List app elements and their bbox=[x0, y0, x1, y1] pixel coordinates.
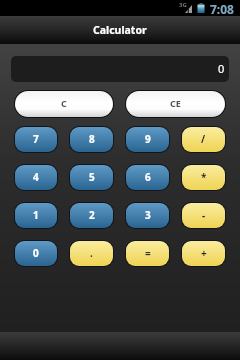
button[interactable]: 0 bbox=[15, 241, 57, 266]
button[interactable]: 2 bbox=[70, 203, 113, 228]
staticText: - bbox=[202, 208, 206, 222]
staticText: 9 bbox=[145, 132, 151, 146]
staticText: 0 bbox=[33, 246, 39, 260]
staticText: . bbox=[90, 246, 93, 260]
staticText: 6 bbox=[145, 170, 151, 184]
button[interactable]: + bbox=[182, 241, 225, 266]
button[interactable]: - bbox=[182, 203, 225, 228]
button[interactable]: 4 bbox=[15, 165, 57, 190]
staticText: CE bbox=[170, 97, 181, 109]
staticText: 4 bbox=[33, 170, 39, 184]
button[interactable]: 9 bbox=[126, 127, 169, 152]
button[interactable]: / bbox=[182, 127, 225, 152]
button[interactable]: 7 bbox=[15, 127, 57, 152]
staticText: 0 bbox=[218, 61, 225, 76]
button[interactable]: CE bbox=[126, 91, 225, 117]
staticText: 3 bbox=[145, 208, 151, 222]
staticText: 3G bbox=[179, 1, 187, 9]
staticText: 8 bbox=[89, 132, 95, 146]
staticText: 7:08 bbox=[210, 1, 234, 16]
staticText: = bbox=[145, 246, 151, 260]
button[interactable]: 0 bbox=[11, 56, 229, 82]
staticText: 5 bbox=[89, 170, 95, 184]
button[interactable]: . bbox=[70, 241, 113, 266]
button[interactable]: 8 bbox=[70, 127, 113, 152]
button[interactable]: 3 bbox=[126, 203, 169, 228]
staticText: * bbox=[201, 170, 207, 184]
staticText: Calculator bbox=[93, 23, 147, 37]
staticText: + bbox=[201, 246, 207, 260]
button[interactable]: 6 bbox=[126, 165, 169, 190]
button[interactable]: * bbox=[182, 165, 225, 190]
staticText: / bbox=[201, 132, 206, 146]
staticText: 7 bbox=[33, 132, 39, 146]
button[interactable]: C bbox=[15, 91, 113, 117]
button[interactable]: 1 bbox=[15, 203, 57, 228]
button[interactable]: 5 bbox=[70, 165, 113, 190]
staticText: 2 bbox=[89, 208, 95, 222]
button[interactable]: = bbox=[126, 241, 169, 266]
staticText: 1 bbox=[33, 208, 39, 222]
staticText: C bbox=[61, 97, 67, 109]
